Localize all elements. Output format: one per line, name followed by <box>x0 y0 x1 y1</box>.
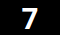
staticText: 7 <box>21 0 38 35</box>
